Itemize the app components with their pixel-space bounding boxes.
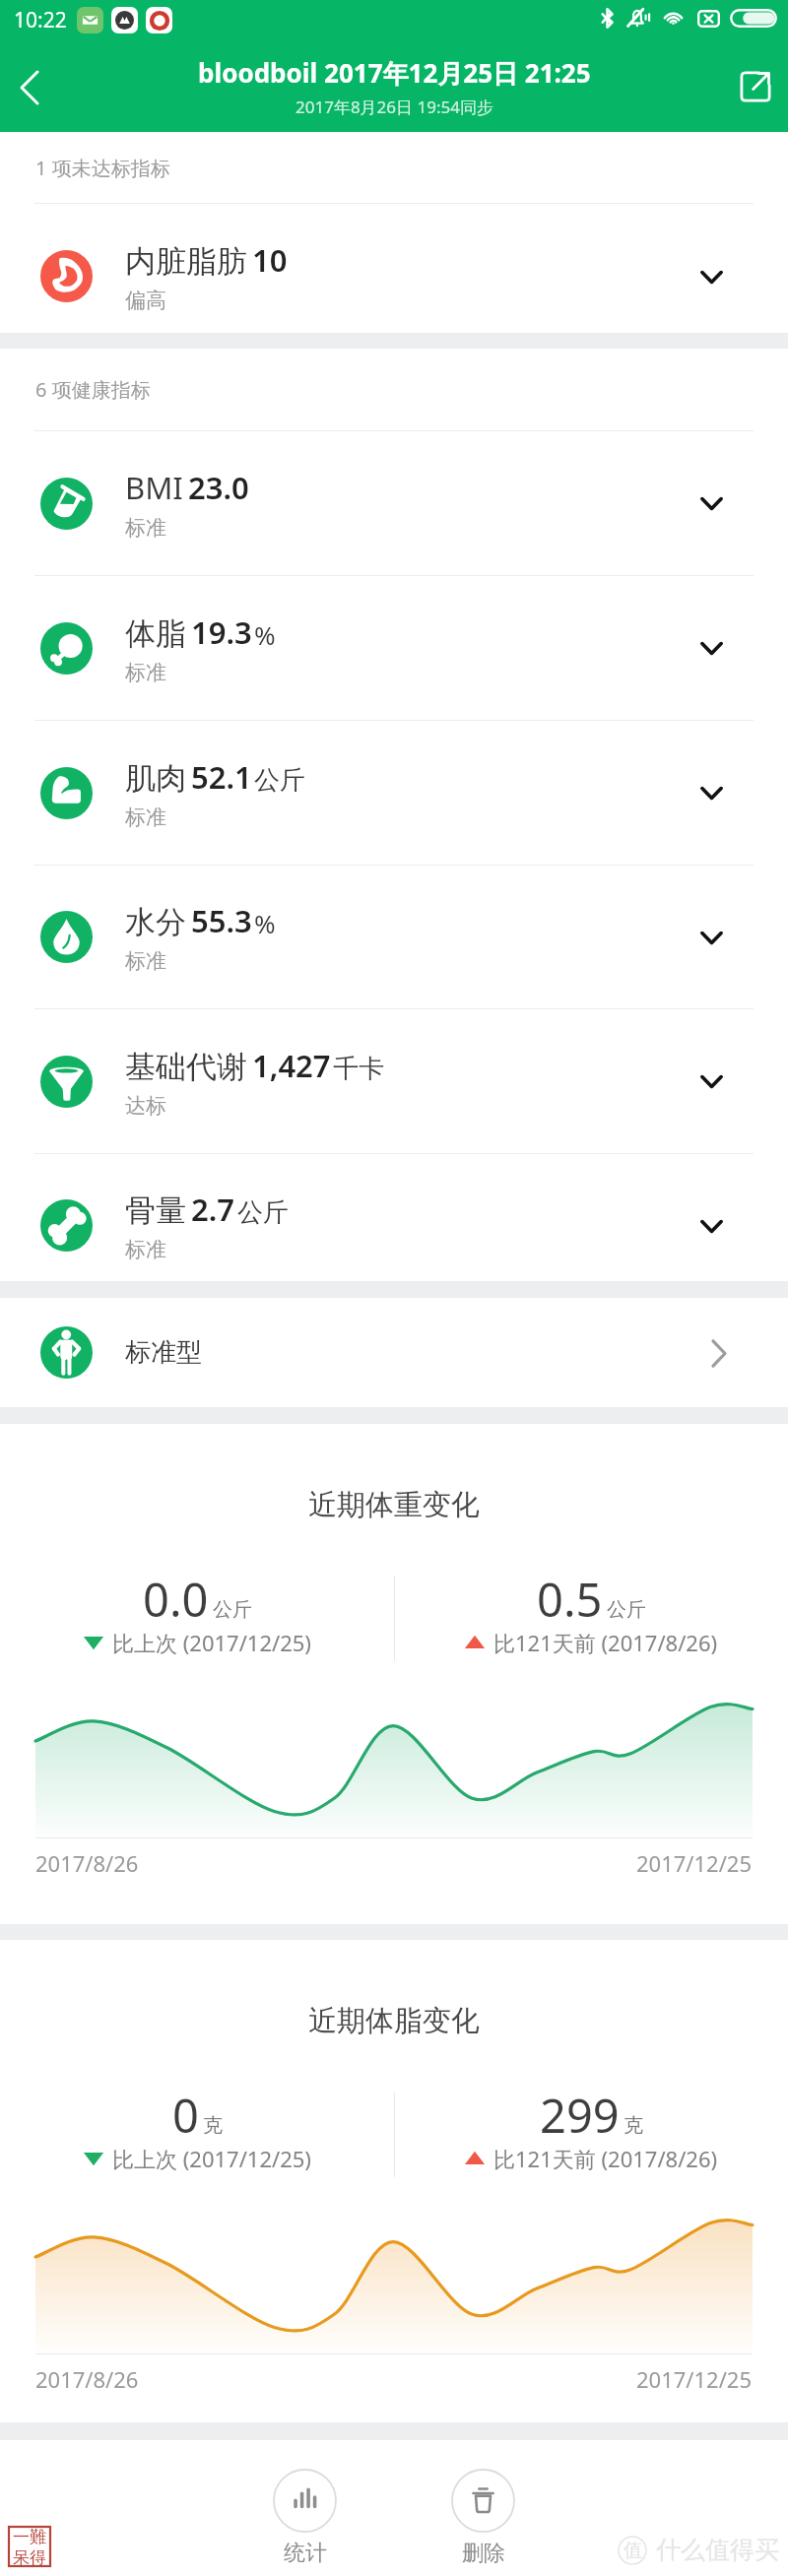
button[interactable]: 标准型 [0, 1298, 788, 1407]
staticText: 公斤 [607, 1597, 646, 1622]
button[interactable]: 体脂 [0, 576, 788, 720]
button[interactable]: Back [0, 43, 85, 132]
button[interactable]: 删除 [451, 2469, 515, 2567]
staticText: 52.1 [191, 756, 252, 798]
staticText: 标准 [125, 948, 166, 974]
staticText: 肌肉 [125, 759, 186, 798]
staticText: 基础代谢 [125, 1048, 247, 1086]
staticText: 值 [624, 2539, 642, 2562]
staticText: 呆得 [13, 2547, 46, 2566]
staticText: 23.0 [188, 467, 249, 508]
staticText: 标准型 [125, 1336, 202, 1369]
staticText: 公斤 [254, 764, 305, 797]
staticText: 2017/12/25 [636, 2364, 753, 2394]
button[interactable]: Expand [677, 758, 746, 827]
button[interactable]: 内脏脂肪 [0, 204, 788, 333]
staticText: 比121天前 (2017/8/26) [493, 2144, 718, 2173]
staticText: 克 [624, 2113, 643, 2138]
staticText: 299 [540, 2084, 620, 2147]
staticText: bloodboil 2017年12月25日 21:25 [198, 55, 591, 91]
staticText: 0.5 [537, 1568, 603, 1631]
staticText: 1 项未达标指标 [35, 155, 170, 181]
staticText: 2017/8/26 [35, 2364, 139, 2394]
staticText: 公斤 [237, 1196, 289, 1229]
staticText: 公斤 [213, 1597, 252, 1622]
staticText: 1,427 [252, 1045, 331, 1086]
button[interactable]: Expand [677, 1191, 746, 1260]
button[interactable]: Expand [677, 242, 746, 311]
button[interactable]: Expand [677, 1047, 746, 1116]
staticText: 2.7 [191, 1189, 235, 1230]
staticText: 19.3 [191, 612, 252, 653]
staticText: 骨量 [125, 1191, 186, 1230]
staticText: 一難 [13, 2527, 46, 2547]
staticText: 标准 [125, 660, 166, 685]
button[interactable]: Share [709, 43, 788, 132]
staticText: 标准 [125, 805, 166, 830]
staticText: 克 [203, 2113, 223, 2138]
staticText: 2017/12/25 [636, 1848, 753, 1878]
button[interactable]: Expand [677, 613, 746, 682]
staticText: 比121天前 (2017/8/26) [493, 1628, 718, 1657]
staticText: 达标 [125, 1093, 166, 1119]
staticText: 0.0 [143, 1568, 209, 1631]
staticText: 2017/8/26 [35, 1848, 139, 1878]
staticText: 统计 [284, 2540, 327, 2567]
staticText: 2017年8月26日 19:54同步 [295, 96, 493, 118]
staticText: 近期体脂变化 [308, 2003, 480, 2039]
staticText: BMI [125, 467, 183, 508]
staticText: 10 [252, 239, 288, 281]
staticText: 6 项健康指标 [35, 376, 151, 403]
staticText: 比上次 (2017/12/25) [112, 1628, 311, 1657]
staticText: 近期体重变化 [308, 1487, 480, 1523]
staticText: % [254, 906, 276, 940]
staticText: 删除 [462, 2540, 505, 2567]
staticText: 什么值得买 [656, 2535, 779, 2565]
staticText: 标准 [125, 1237, 166, 1262]
staticText: 千卡 [333, 1053, 384, 1085]
button[interactable]: Details [689, 1323, 749, 1383]
button[interactable]: 基础代谢 [0, 1009, 788, 1153]
button[interactable]: 肌肉 [0, 721, 788, 865]
button[interactable]: 骨量 [0, 1154, 788, 1281]
staticText: 体脂 [125, 614, 186, 653]
button[interactable]: 统计 [273, 2469, 337, 2567]
staticText: % [254, 617, 276, 652]
button[interactable]: BMI [0, 431, 788, 575]
button[interactable]: 水分 [0, 866, 788, 1008]
button[interactable]: Expand [677, 903, 746, 972]
staticText: 偏高 [125, 288, 166, 313]
button[interactable]: Expand [677, 469, 746, 538]
staticText: 水分 [125, 903, 186, 941]
staticText: 10:22 [14, 6, 67, 34]
staticText: 0 [172, 2084, 199, 2147]
staticText: 标准 [125, 515, 166, 541]
staticText: 55.3 [191, 900, 252, 941]
staticText: 内脏脂肪 [125, 242, 247, 281]
staticText: 比上次 (2017/12/25) [112, 2144, 311, 2173]
